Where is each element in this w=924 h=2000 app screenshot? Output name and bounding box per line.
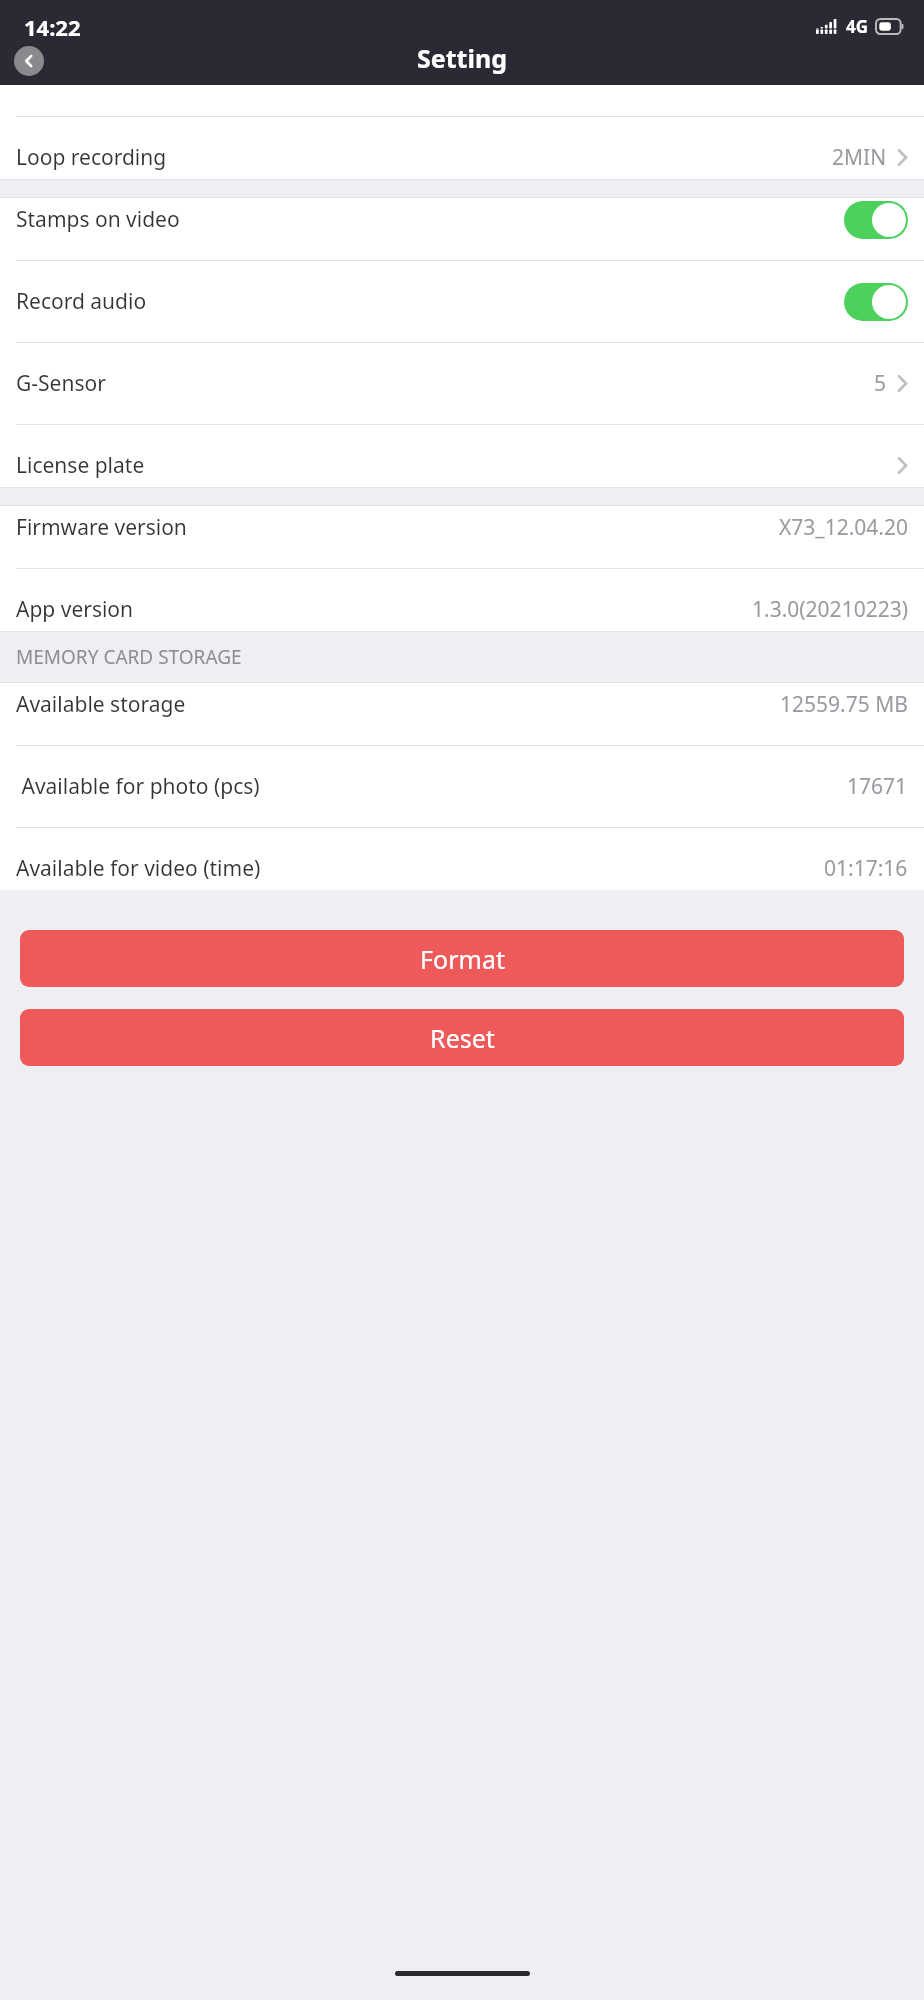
staticText: Stamps on video xyxy=(16,205,180,234)
button[interactable]: G-Sensor xyxy=(0,362,924,405)
button[interactable]: Firmware version xyxy=(0,506,924,549)
staticText: 17671 xyxy=(847,772,908,801)
button[interactable]: Loop recording xyxy=(0,136,924,179)
staticText: License plate xyxy=(16,451,145,480)
button[interactable]: Available for video (time) xyxy=(0,847,924,890)
staticText: Available storage xyxy=(16,690,186,719)
staticText: Setting xyxy=(417,41,507,75)
staticText: Record audio xyxy=(16,287,147,316)
button[interactable]: Reset xyxy=(20,1009,904,1066)
staticText: Firmware version xyxy=(16,513,187,542)
staticText: G-Sensor xyxy=(16,369,106,398)
button[interactable]: Available for photo (pcs) xyxy=(0,765,924,808)
staticText: 12559.75 MB xyxy=(780,690,908,719)
staticText: Available for photo (pcs) xyxy=(16,772,260,801)
staticText: Loop recording xyxy=(16,143,167,172)
staticText: 01:17:16 xyxy=(824,854,908,883)
button[interactable]: Toggle Record audio xyxy=(844,283,908,321)
staticText: X73_12.04.20 xyxy=(779,513,908,542)
staticText: 4G xyxy=(846,15,869,38)
staticText: 14:22 xyxy=(24,12,81,42)
staticText: 2MIN xyxy=(832,143,887,172)
button[interactable]: License plate xyxy=(0,444,924,487)
staticText: 5 xyxy=(874,369,887,398)
button[interactable]: App version xyxy=(0,588,924,631)
button[interactable]: Back xyxy=(14,46,44,76)
button[interactable]: Record audio xyxy=(0,280,924,323)
staticText: MEMORY CARD STORAGE xyxy=(16,644,242,670)
staticText: Available for video (time) xyxy=(16,854,261,883)
button[interactable]: Toggle Stamps on video xyxy=(844,201,908,239)
button[interactable]: Format xyxy=(20,930,904,987)
button[interactable]: Available storage xyxy=(0,683,924,726)
staticText: 1.3.0(20210223) xyxy=(752,595,908,624)
staticText: App version xyxy=(16,595,134,624)
staticText: Format xyxy=(420,942,505,976)
button[interactable]: Stamps on video xyxy=(0,198,924,241)
staticText: Reset xyxy=(430,1021,495,1055)
